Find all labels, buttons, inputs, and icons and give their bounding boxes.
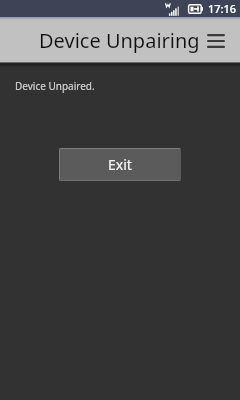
staticText: Exit xyxy=(108,155,132,174)
button[interactable]: Menu xyxy=(202,27,230,55)
staticText: Device Unpaired. xyxy=(15,79,95,93)
button[interactable]: Exit xyxy=(59,148,181,181)
staticText: 17:16 xyxy=(208,1,237,16)
staticText: Device Unpairing xyxy=(39,27,200,54)
